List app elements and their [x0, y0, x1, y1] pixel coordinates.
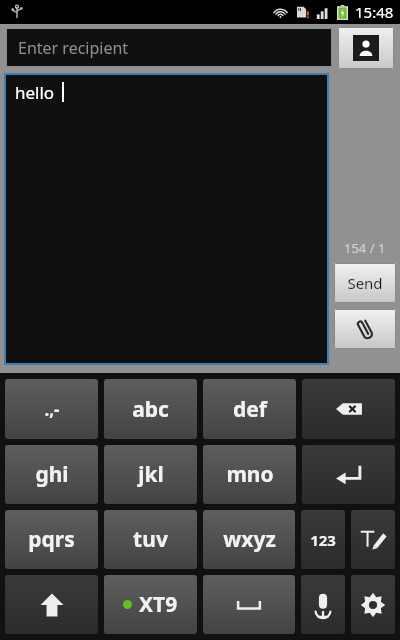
staticText: XT9	[139, 590, 178, 619]
button[interactable]: XT9	[104, 575, 197, 634]
staticText: 15:48	[355, 2, 394, 22]
button[interactable]: Settings	[351, 575, 395, 634]
button[interactable]: pqrs	[5, 510, 98, 569]
button[interactable]: ghi	[5, 445, 98, 504]
button[interactable]: Enter	[302, 445, 395, 504]
staticText: mno	[226, 460, 274, 489]
staticText: pqrs	[28, 525, 75, 554]
staticText: 154 / 1	[344, 239, 386, 257]
button[interactable]: jkl	[104, 445, 197, 504]
button[interactable]: mno	[203, 445, 296, 504]
staticText: tuv	[133, 525, 168, 554]
button[interactable]: tuv	[104, 510, 197, 569]
button[interactable]: Text input mode	[351, 510, 395, 569]
staticText: Enter recipient	[18, 37, 129, 59]
button[interactable]: Shift	[5, 575, 98, 634]
staticText: def	[233, 395, 267, 424]
button[interactable]: 123	[301, 510, 345, 569]
button[interactable]: hello	[6, 75, 327, 363]
button[interactable]: wxyz	[203, 510, 295, 569]
staticText: .,-	[44, 398, 60, 421]
staticText: abc	[132, 395, 169, 424]
button[interactable]: Send	[334, 263, 396, 303]
staticText: ghi	[35, 460, 69, 489]
button[interactable]: Attach	[334, 309, 396, 349]
button[interactable]: .,-	[5, 379, 98, 439]
button[interactable]: def	[203, 379, 296, 439]
staticText: hello	[15, 81, 55, 104]
button[interactable]: Pick contact	[338, 27, 394, 69]
button[interactable]: Voice input	[301, 575, 345, 634]
staticText: jkl	[138, 460, 164, 489]
button[interactable]: abc	[104, 379, 197, 439]
button[interactable]: Space	[203, 575, 295, 634]
staticText: 123	[310, 530, 336, 550]
staticText: wxyz	[223, 525, 276, 554]
staticText: Send	[347, 273, 383, 293]
button[interactable]: Backspace	[302, 379, 395, 439]
button[interactable]: Enter recipient	[7, 29, 331, 66]
